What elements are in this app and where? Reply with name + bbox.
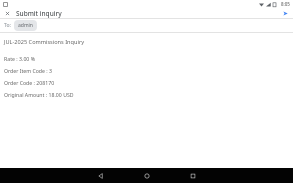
button[interactable]: admin — [14, 20, 37, 31]
button[interactable]: Send — [280, 8, 290, 18]
staticText: Order Item Code : 3 — [4, 67, 53, 74]
button[interactable]: Close — [2, 8, 12, 18]
staticText: 8:05 — [281, 1, 290, 7]
staticText: To: — [4, 22, 11, 29]
staticText: Original Amount : 18.00 USD — [4, 91, 74, 98]
staticText: Submit inquiry — [16, 9, 62, 18]
button[interactable]: Recents — [181, 168, 205, 183]
staticText: JUL-2025 Commissions Inquiry — [4, 38, 85, 46]
button[interactable]: Back — [89, 168, 113, 183]
staticText: admin — [18, 22, 33, 29]
staticText: Rate : 3.00 % — [4, 55, 35, 62]
button[interactable]: To: — [0, 19, 293, 32]
button[interactable]: Home — [135, 168, 159, 183]
staticText: Order Code : 208170 — [4, 79, 55, 86]
